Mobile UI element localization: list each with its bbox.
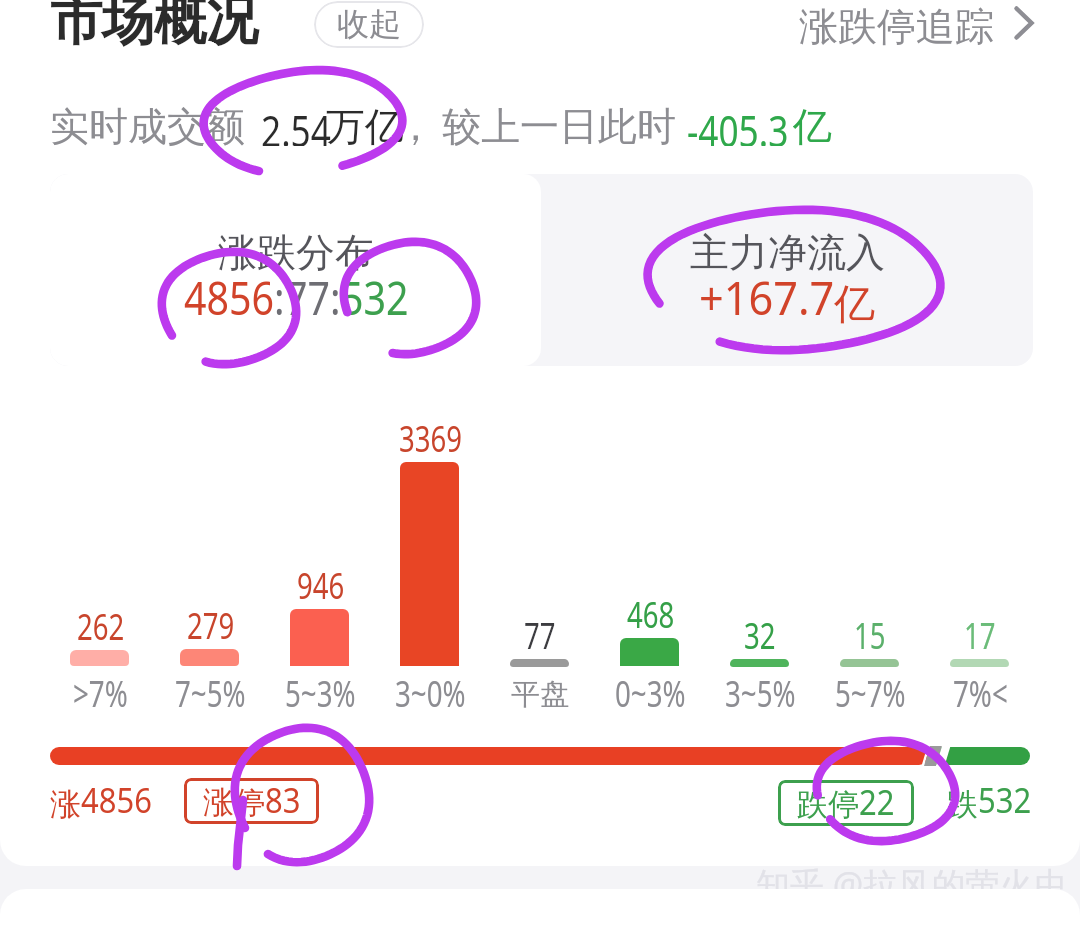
- staticText: 收起: [337, 4, 401, 44]
- button[interactable]: 涨跌分布: [50, 174, 541, 366]
- staticText: +167.7: [699, 266, 834, 329]
- staticText: 22: [859, 780, 895, 824]
- button[interactable]: 收起: [314, 1, 424, 48]
- staticText: 涨: [50, 785, 81, 824]
- staticText: 跌: [947, 785, 978, 824]
- staticText: 532: [341, 266, 408, 329]
- staticText: 3~0%: [395, 669, 466, 718]
- staticText: 实时成交额: [50, 102, 245, 148]
- staticText: 77: [524, 611, 556, 660]
- staticText: 跌停: [797, 785, 859, 824]
- staticText: 亿: [834, 279, 875, 331]
- staticText: :: [330, 266, 341, 329]
- staticText: 3~5%: [725, 669, 796, 718]
- staticText: 7~5%: [175, 669, 246, 718]
- staticText: 万亿: [326, 102, 404, 148]
- staticText: 较上一日此时: [442, 102, 676, 148]
- staticText: 32: [744, 611, 776, 660]
- staticText: :: [274, 266, 285, 329]
- staticText: 532: [978, 776, 1032, 824]
- staticText: 5~3%: [285, 669, 356, 718]
- staticText: 17: [964, 611, 996, 660]
- staticText: 2.54: [261, 100, 331, 146]
- staticText: 亿: [793, 102, 832, 148]
- staticText: 7%<: [953, 669, 1008, 718]
- staticText: -405.3: [687, 100, 789, 146]
- button[interactable]: 跌停: [778, 780, 914, 826]
- other: 涨跌停追踪: [1014, 6, 1034, 40]
- staticText: 468: [627, 590, 674, 639]
- staticText: 0~3%: [615, 669, 686, 718]
- staticText: 946: [297, 561, 344, 610]
- staticText: 77: [285, 266, 330, 329]
- staticText: 知乎 @拉风的萤火虫: [756, 861, 1068, 907]
- button[interactable]: 涨停: [184, 778, 319, 824]
- staticText: >7%: [73, 669, 128, 718]
- staticText: 4856: [81, 776, 153, 824]
- button[interactable]: 涨跌停追踪: [780, 0, 1060, 50]
- staticText: 涨跌停追踪: [799, 2, 994, 51]
- staticText: 279: [187, 601, 234, 650]
- staticText: 83: [265, 778, 301, 822]
- staticText: 5~7%: [835, 669, 906, 718]
- staticText: 市场概况: [50, 0, 258, 55]
- staticText: 15: [854, 611, 886, 660]
- staticText: ，: [396, 102, 435, 148]
- staticText: 主力净流入: [690, 228, 885, 277]
- staticText: 262: [77, 602, 124, 651]
- staticText: 平盘: [511, 676, 569, 713]
- staticText: 3369: [399, 414, 462, 463]
- staticText: 4856: [184, 266, 275, 329]
- staticText: 涨停: [203, 783, 265, 822]
- button[interactable]: 主力净流入: [541, 174, 1033, 366]
- staticText: 涨跌分布: [218, 228, 374, 277]
